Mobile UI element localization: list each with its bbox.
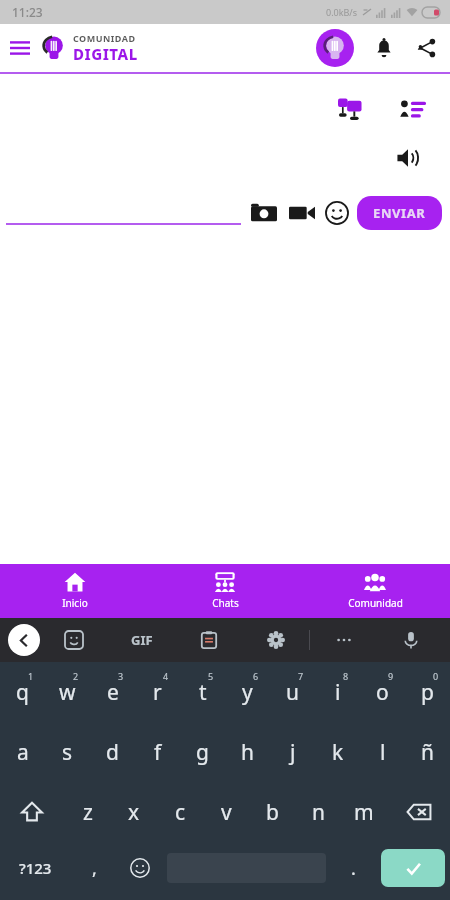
staticText: h — [241, 738, 254, 767]
button[interactable]: e — [90, 662, 135, 722]
button[interactable]: d — [90, 722, 135, 782]
button[interactable]: v — [203, 782, 249, 842]
button[interactable]: Settings — [242, 618, 309, 662]
button[interactable]: j — [270, 722, 315, 782]
button[interactable]: i — [315, 662, 360, 722]
button[interactable]: Chats — [150, 564, 300, 618]
staticText: ñ — [421, 738, 434, 767]
staticText: 1 — [28, 670, 34, 682]
staticText: m — [354, 798, 374, 827]
staticText: 0 — [433, 670, 439, 682]
button[interactable]: l — [360, 722, 405, 782]
button[interactable]: k — [315, 722, 360, 782]
button[interactable]: n — [295, 782, 341, 842]
button[interactable]: s — [45, 722, 90, 782]
button[interactable]: Stickers — [40, 618, 108, 662]
staticText: 2 — [73, 670, 79, 682]
button[interactable]: Participants — [394, 90, 432, 128]
staticText: e — [107, 678, 119, 707]
button[interactable]: t — [180, 662, 225, 722]
button[interactable]: w — [45, 662, 90, 722]
staticText: Chats — [212, 596, 239, 610]
staticText: n — [312, 798, 325, 827]
button[interactable]: Clipboard — [175, 618, 242, 662]
button[interactable]: c — [157, 782, 203, 842]
button[interactable]: g — [180, 722, 225, 782]
staticText: 0.0kB/s — [326, 6, 358, 18]
staticText: i — [335, 678, 341, 707]
button[interactable]: Menu — [0, 28, 40, 68]
button[interactable]: Back — [8, 624, 40, 656]
staticText: o — [376, 678, 389, 707]
button[interactable]: . — [330, 842, 376, 894]
staticText: . — [351, 856, 356, 881]
button[interactable]: b — [249, 782, 295, 842]
button[interactable]: o — [360, 662, 405, 722]
button[interactable]: GIF — [108, 618, 175, 662]
staticText: q — [16, 678, 29, 707]
button[interactable]: r — [135, 662, 180, 722]
button[interactable]: ?123 — [0, 842, 71, 894]
staticText: s — [62, 738, 73, 767]
button[interactable]: ñ — [405, 722, 450, 782]
staticText: 8 — [343, 670, 349, 682]
staticText: 9 — [388, 670, 394, 682]
button[interactable]: Voice input — [377, 618, 444, 662]
staticText: t — [199, 678, 207, 707]
button[interactable]: Present screen — [332, 91, 368, 127]
staticText: y — [242, 678, 253, 707]
button[interactable]: q — [0, 662, 45, 722]
staticText: COMUNIDAD — [73, 32, 136, 44]
staticText: GIF — [131, 631, 153, 649]
button[interactable]: Emoji — [117, 842, 163, 894]
button[interactable]: More — [310, 618, 377, 662]
button[interactable]: Video — [285, 200, 319, 226]
staticText: 3 — [118, 670, 124, 682]
button[interactable]: Sound — [390, 140, 426, 176]
button[interactable]: z — [64, 782, 111, 842]
button[interactable]: Inicio — [0, 564, 150, 618]
button[interactable]: Comunidad — [300, 564, 450, 618]
staticText: Inicio — [62, 596, 88, 610]
staticText: d — [106, 738, 119, 767]
button[interactable]: ENVIAR — [357, 196, 442, 230]
staticText: 7 — [298, 670, 304, 682]
button[interactable]: Backspace — [387, 782, 450, 842]
button[interactable]: u — [270, 662, 315, 722]
button[interactable]: f — [135, 722, 180, 782]
staticText: 5 — [208, 670, 214, 682]
staticText: f — [154, 738, 162, 767]
staticText: z — [83, 798, 93, 827]
button[interactable]: Share — [410, 32, 442, 64]
staticText: DIGITAL — [73, 44, 138, 64]
button[interactable]: Enter — [381, 849, 445, 887]
staticText: 11:23 — [12, 4, 43, 20]
staticText: Comunidad — [348, 596, 403, 610]
staticText: u — [286, 678, 299, 707]
staticText: w — [59, 678, 76, 707]
button[interactable]: , — [71, 842, 117, 894]
staticText: b — [266, 798, 279, 827]
button[interactable]: a — [0, 722, 45, 782]
button[interactable]: y — [225, 662, 270, 722]
staticText: a — [17, 738, 29, 767]
staticText: ENVIAR — [373, 204, 426, 222]
staticText: r — [153, 678, 162, 707]
staticText: g — [196, 738, 209, 767]
button[interactable]: p — [405, 662, 450, 722]
button[interactable]: Notifications — [368, 32, 400, 64]
staticText: l — [380, 738, 386, 767]
button[interactable]: h — [225, 722, 270, 782]
staticText: 4 — [163, 670, 169, 682]
staticText: v — [221, 798, 232, 827]
button[interactable]: m — [341, 782, 387, 842]
staticText: ?123 — [19, 858, 52, 878]
button[interactable]: Shift — [0, 782, 64, 842]
button[interactable]: x — [111, 782, 157, 842]
button[interactable]: Camera — [247, 200, 281, 226]
button[interactable]: Profile — [312, 25, 358, 71]
button[interactable]: Emoji — [323, 201, 351, 225]
staticText: k — [332, 738, 344, 767]
